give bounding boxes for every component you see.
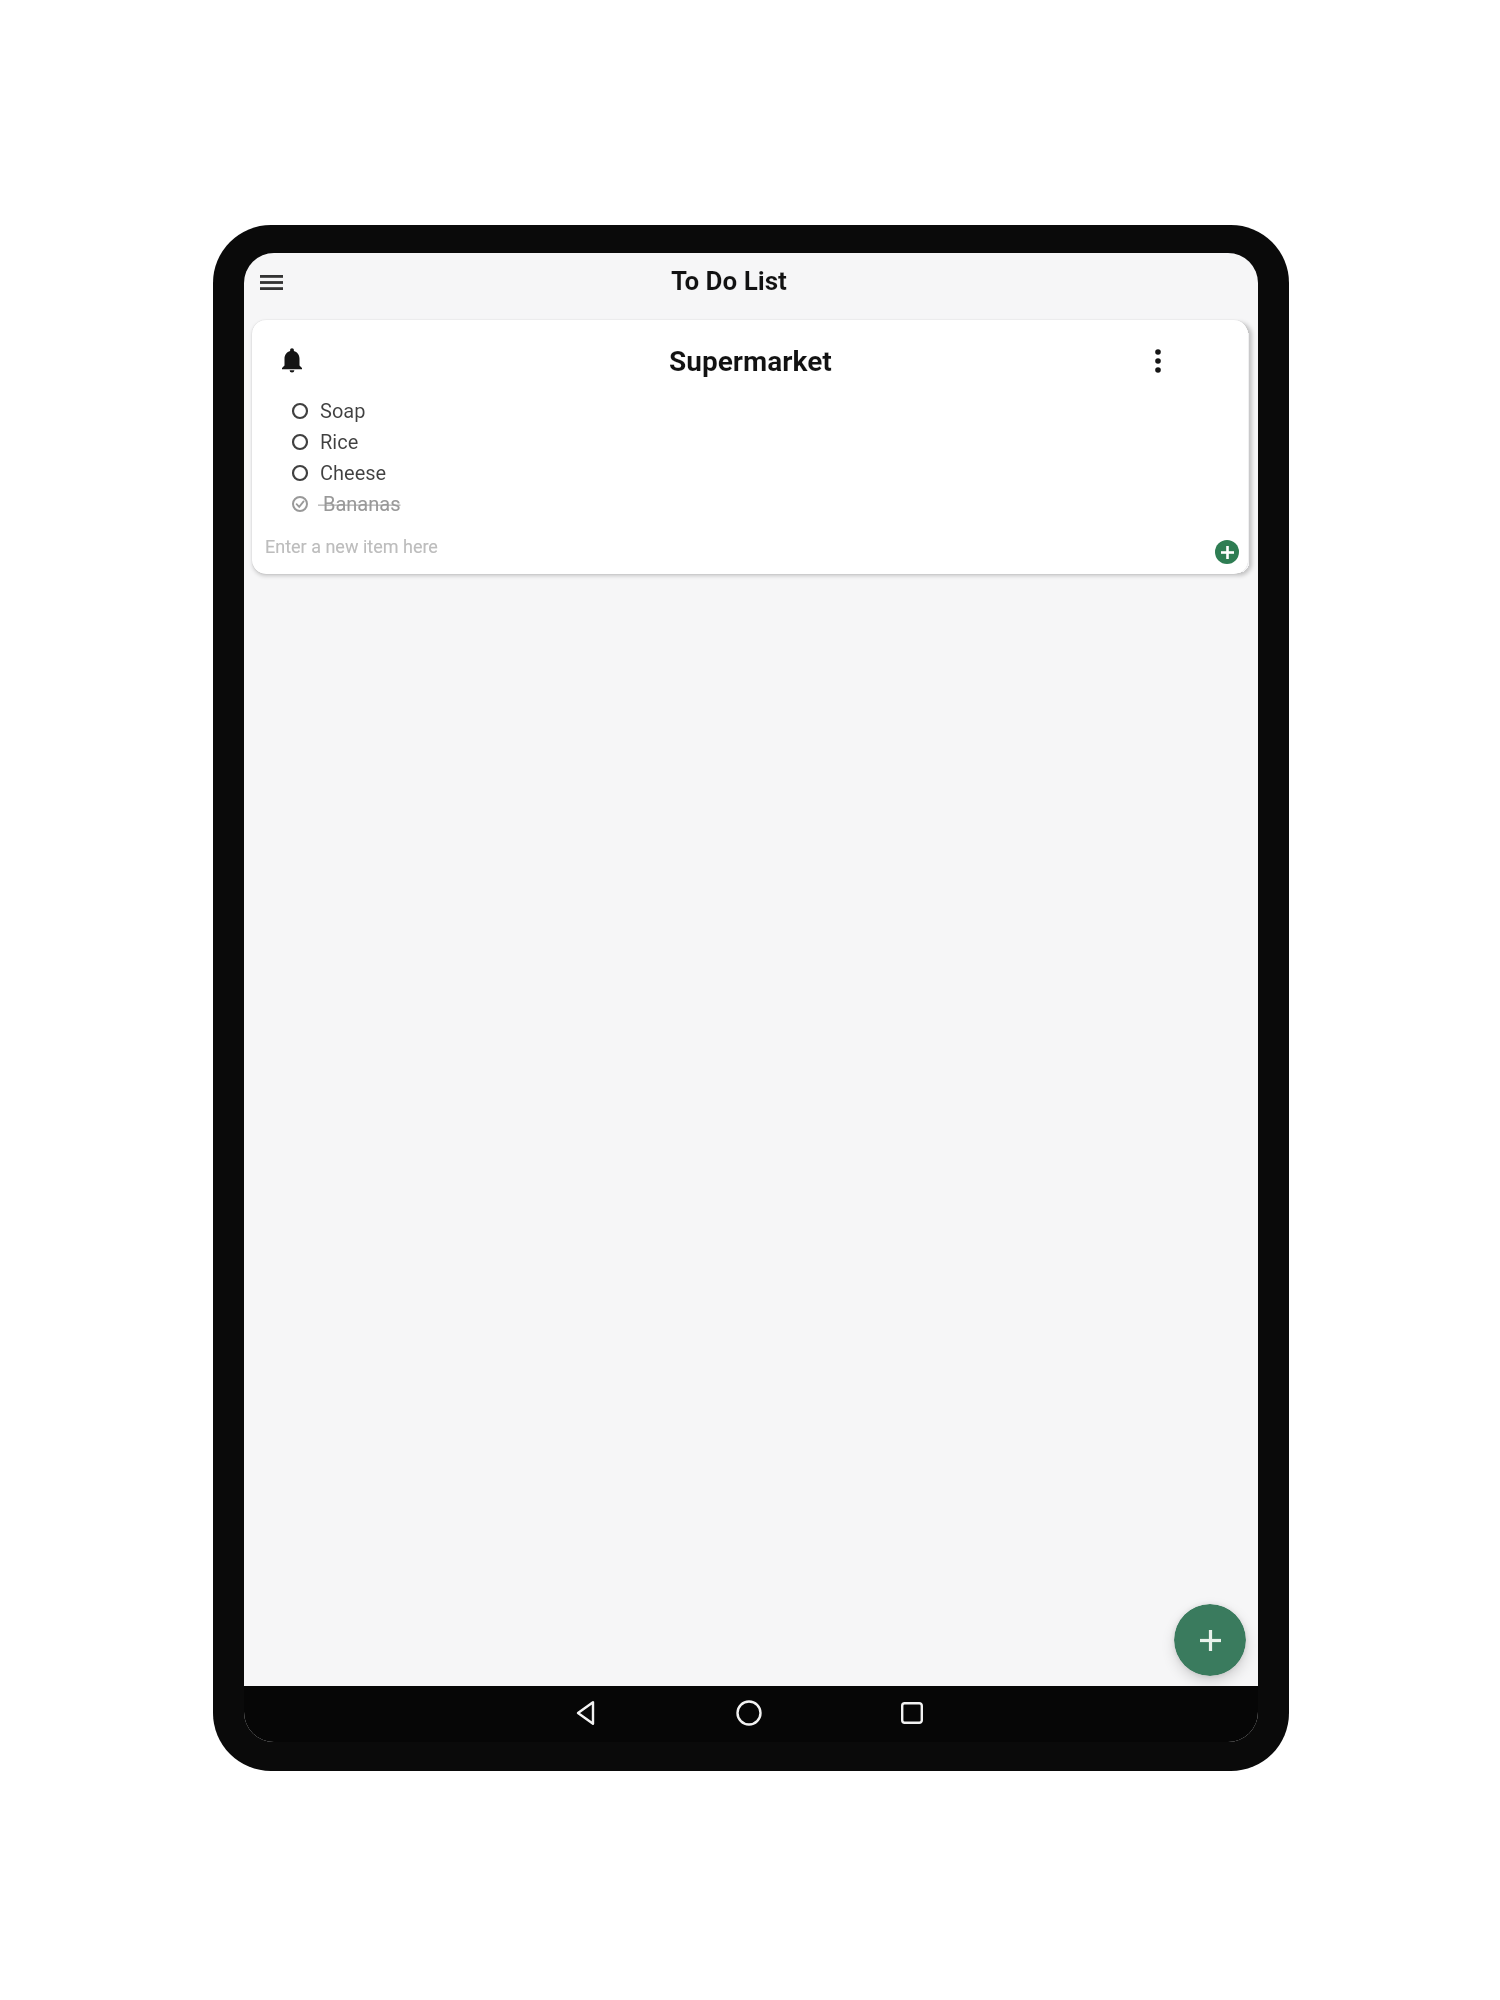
staticText: Rice: [320, 430, 359, 453]
button[interactable]: [271, 339, 313, 381]
staticText: Supermarket: [669, 345, 832, 378]
button[interactable]: [1174, 1604, 1246, 1676]
button[interactable]: [1215, 540, 1239, 564]
button[interactable]: Rice: [282, 426, 602, 457]
staticText: Soap: [320, 399, 366, 422]
staticText: Cheese: [320, 461, 387, 484]
staticText: To Do List: [671, 266, 787, 296]
button[interactable]: Soap: [282, 395, 602, 426]
button[interactable]: [725, 1689, 773, 1737]
button[interactable]: [1136, 339, 1180, 383]
button[interactable]: Bananas: [282, 488, 602, 519]
button[interactable]: Enter a new item here: [252, 526, 1248, 574]
button[interactable]: Cheese: [282, 457, 602, 488]
button[interactable]: [888, 1689, 936, 1737]
staticText: Enter a new item here: [265, 536, 438, 557]
staticText: Bananas: [318, 492, 401, 515]
button[interactable]: [248, 259, 294, 305]
button[interactable]: [563, 1689, 611, 1737]
